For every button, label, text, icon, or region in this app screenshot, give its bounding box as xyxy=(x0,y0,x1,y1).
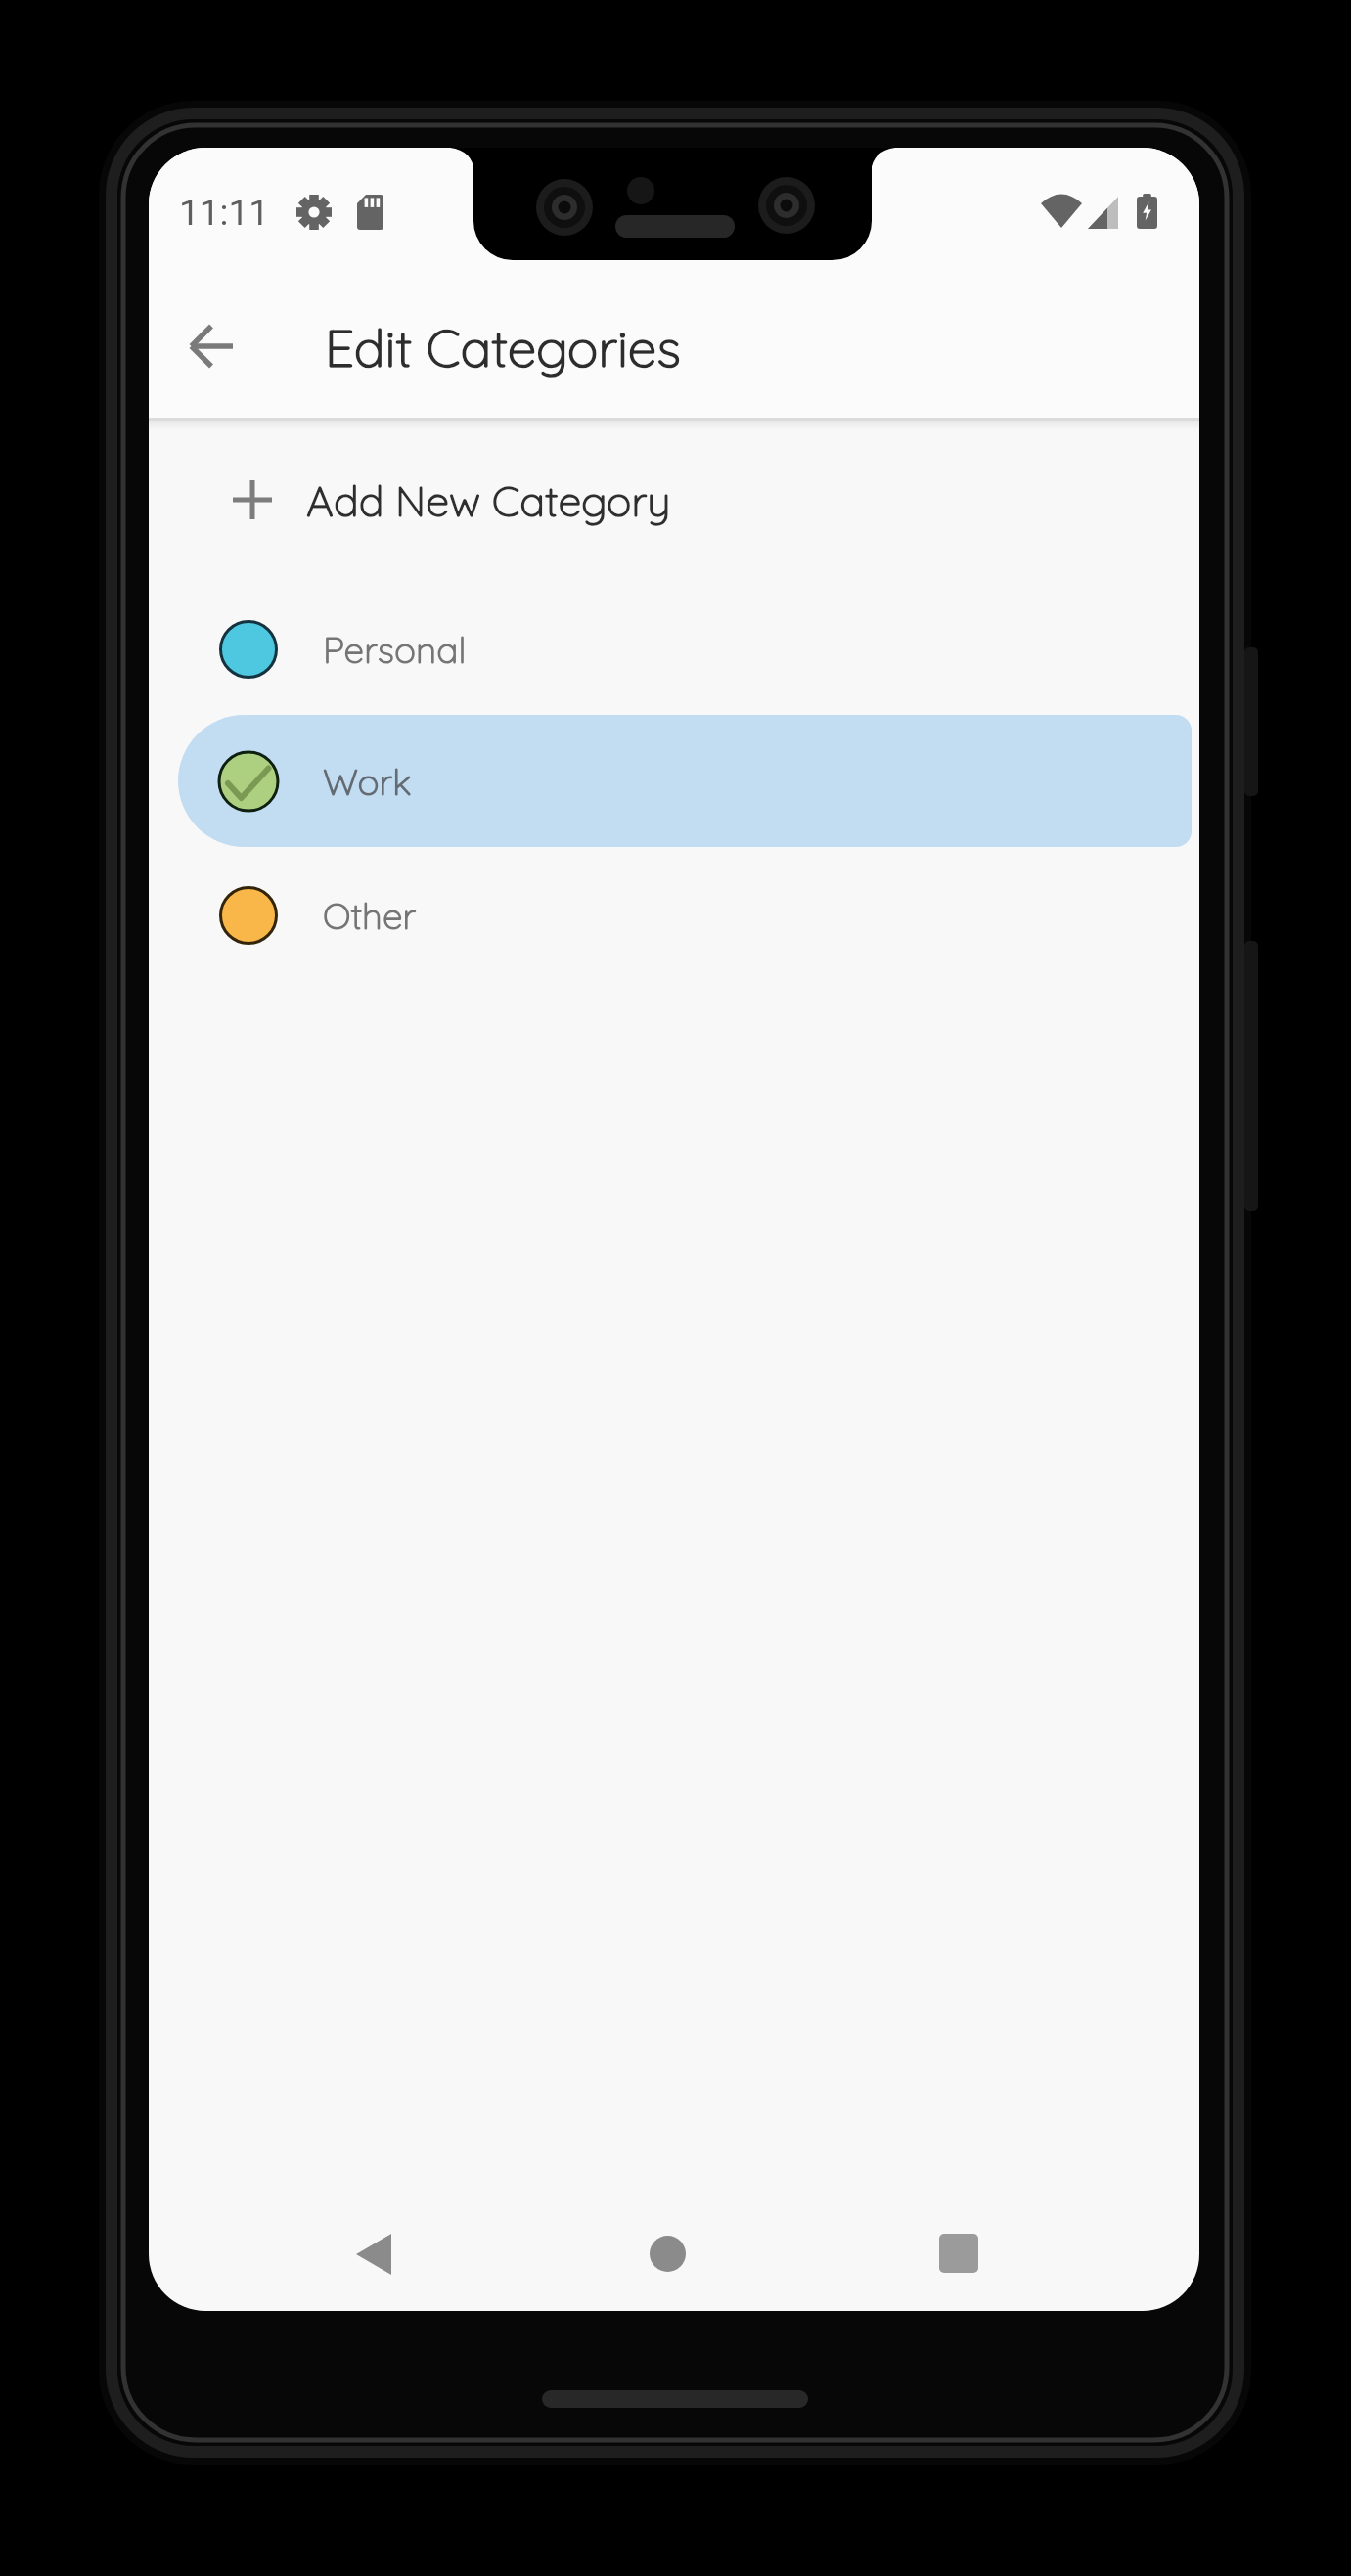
staticText: 11:11 xyxy=(179,192,270,231)
button[interactable]: Personal xyxy=(149,583,1199,716)
button[interactable]: Work xyxy=(178,715,1192,847)
staticText: Personal xyxy=(323,627,467,672)
staticText: Edit Categories xyxy=(325,315,681,379)
button[interactable] xyxy=(173,307,251,385)
staticText: Add New Category xyxy=(306,474,671,527)
staticText: Work xyxy=(323,759,412,804)
button[interactable]: Add New Category xyxy=(149,441,1199,560)
button[interactable] xyxy=(329,2210,417,2298)
staticText: Other xyxy=(323,893,417,938)
button[interactable]: Other xyxy=(149,849,1199,982)
button[interactable] xyxy=(915,2209,1003,2297)
button[interactable] xyxy=(623,2209,711,2297)
